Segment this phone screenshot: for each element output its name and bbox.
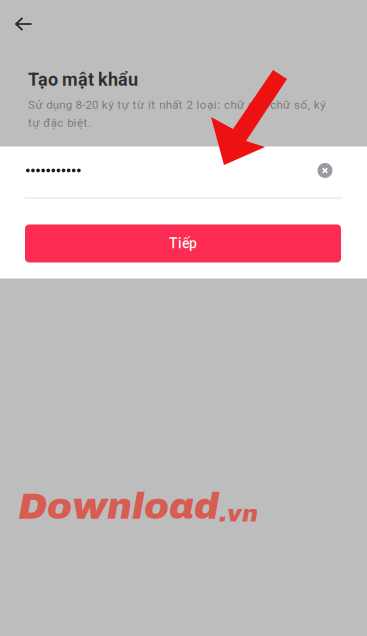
button[interactable]: Tiếp: [25, 224, 341, 262]
staticText: Tiếp: [169, 235, 197, 252]
button[interactable]: Clear password: [310, 155, 340, 185]
staticText: Tạo mật khẩu: [28, 69, 138, 90]
staticText: Sử dụng 8-20 ký tự từ ít nhất 2 loại: ch…: [28, 98, 325, 129]
staticText: Download: [18, 486, 219, 527]
button[interactable]: Back: [0, 0, 48, 48]
staticText: .vn: [219, 500, 258, 527]
